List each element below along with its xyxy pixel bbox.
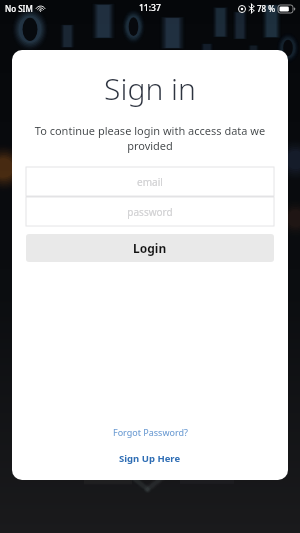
staticText: email [137, 175, 163, 189]
other: Location [238, 5, 246, 13]
button[interactable]: Forgot Password? [103, 423, 198, 441]
other: Battery 78 percent [278, 5, 295, 13]
other: Wi-Fi [36, 4, 45, 13]
staticText: To continue please login with access dat… [34, 123, 266, 153]
button[interactable]: Sign Up Here [109, 449, 191, 468]
button[interactable]: password [26, 197, 274, 226]
staticText: 11:37 [139, 2, 161, 14]
staticText: password [127, 205, 173, 219]
staticText: Forgot Password? [113, 426, 188, 438]
staticText: Sign Up Here [119, 452, 181, 465]
staticText: No SIM [5, 3, 33, 14]
other: Bluetooth [249, 4, 254, 13]
staticText: Sign in [104, 68, 196, 109]
staticText: Login [133, 240, 167, 256]
staticText: 78 % [257, 3, 276, 14]
button[interactable]: email [26, 167, 274, 196]
button[interactable]: Login [26, 234, 274, 262]
